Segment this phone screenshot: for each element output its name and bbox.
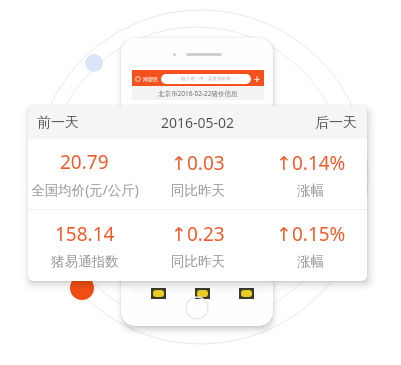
staticText: 海淀区: [143, 76, 158, 82]
staticText: 猪易通指数: [51, 253, 119, 270]
staticText: 输入省、市、县查询价格: [181, 76, 231, 82]
staticText: ↑0.14%: [276, 150, 346, 176]
staticText: 同比昨天: [171, 253, 225, 270]
staticText: 20.79: [60, 149, 109, 175]
staticText: 全国均价(元/公斤): [31, 181, 139, 199]
button[interactable]: 前一天: [28, 106, 141, 139]
staticText: 涨幅: [297, 182, 324, 199]
staticText: 北京市2016-02-22猪价信息: [158, 89, 238, 98]
staticText: 同比昨天: [171, 182, 225, 199]
button[interactable]: 后一天: [254, 106, 367, 139]
staticText: 158.14: [55, 221, 115, 247]
staticText: ↑0.15%: [276, 221, 346, 247]
staticText: 涨幅: [297, 253, 324, 270]
staticText: 2016-05-02: [161, 113, 235, 132]
staticText: +: [254, 71, 261, 86]
staticText: 前一天: [37, 114, 79, 132]
button[interactable]: Home: [185, 296, 209, 320]
staticText: ↑0.03: [171, 150, 225, 176]
staticText: 后一天: [315, 114, 357, 132]
staticText: ↑0.23: [171, 221, 225, 247]
